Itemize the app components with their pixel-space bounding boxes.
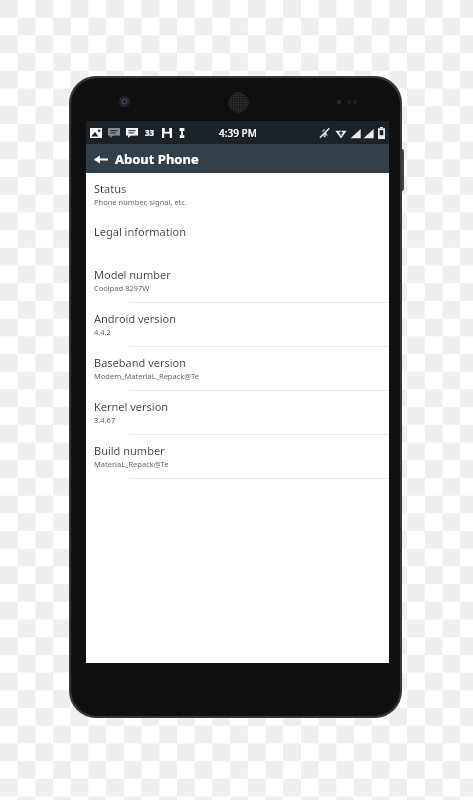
button[interactable]: Android version bbox=[86, 303, 389, 347]
button[interactable]: Build number bbox=[86, 435, 389, 479]
button[interactable]: Back bbox=[90, 148, 112, 170]
staticText: MateriaL_Repack@Te bbox=[94, 459, 169, 469]
staticText: Modem_MateriaL_Repack@Te bbox=[94, 371, 199, 381]
staticText: Model number bbox=[94, 267, 171, 282]
button[interactable]: Kernel version bbox=[86, 391, 389, 435]
button[interactable]: Legal information bbox=[86, 216, 389, 259]
staticText: Build number bbox=[94, 443, 165, 458]
staticText: Status bbox=[94, 181, 127, 196]
staticText: About Phone bbox=[115, 150, 199, 168]
staticText: Coolpad 8297W bbox=[94, 283, 150, 293]
staticText: 4:39 PM bbox=[219, 126, 257, 140]
staticText: Phone number, signal, etc. bbox=[94, 197, 187, 207]
staticText: Baseband version bbox=[94, 355, 187, 370]
staticText: 33 bbox=[145, 127, 155, 138]
button[interactable]: Baseband version bbox=[86, 347, 389, 391]
staticText: 4.4.2 bbox=[94, 327, 111, 337]
staticText: Kernel version bbox=[94, 399, 169, 414]
staticText: Legal information bbox=[94, 224, 186, 239]
staticText: Android version bbox=[94, 311, 176, 326]
staticText: 3.4.67 bbox=[94, 415, 116, 425]
button[interactable]: Model number bbox=[86, 259, 389, 303]
button[interactable]: Status bbox=[86, 173, 389, 216]
